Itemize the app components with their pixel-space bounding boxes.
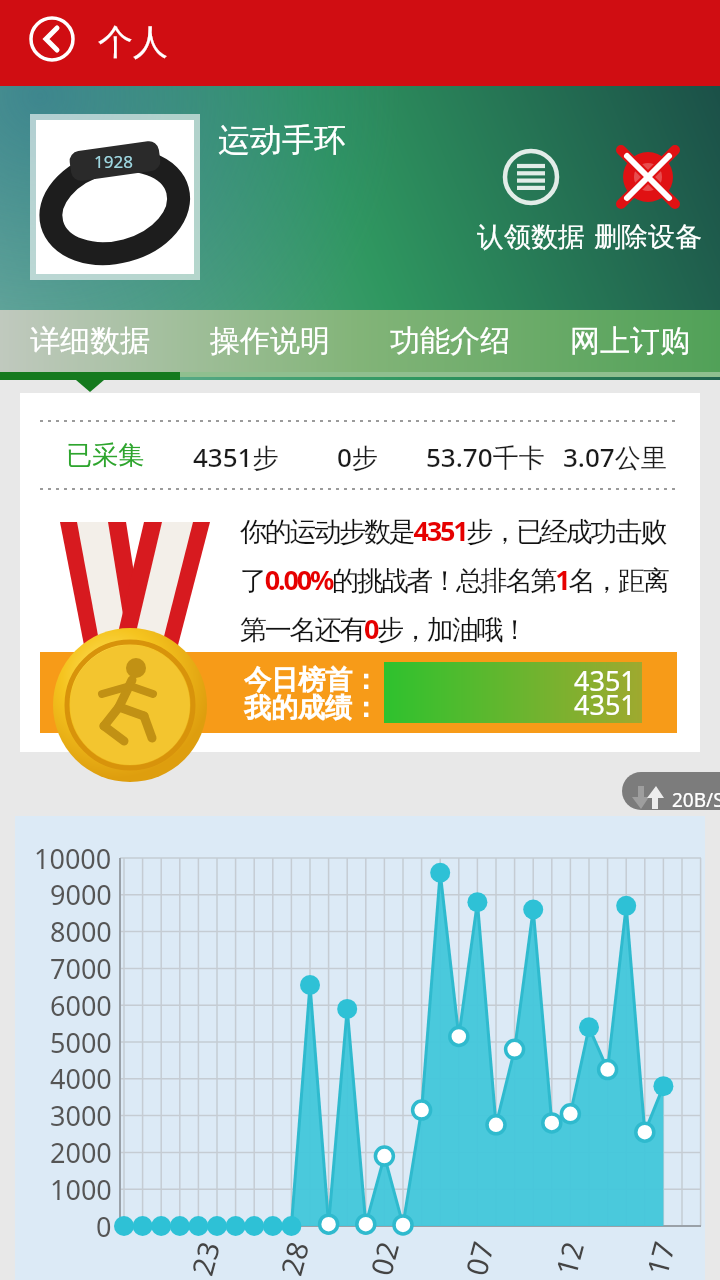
button[interactable]: 删除设备 <box>583 148 713 254</box>
staticText: 你的运动步数是4351步，已经成功击败 了0.00%的挑战者！总排名第1名，距离… <box>240 512 710 647</box>
staticText: 4351步 <box>193 439 279 475</box>
staticText: 我的成绩： <box>244 691 379 725</box>
button[interactable]: 详细数据 <box>0 310 180 372</box>
button[interactable] <box>26 13 78 65</box>
staticText: 已采集 <box>66 439 144 472</box>
staticText: 今日榜首： <box>244 663 379 697</box>
staticText: 认领数据 <box>477 220 585 254</box>
button[interactable]: 操作说明 <box>180 310 360 372</box>
staticText: 53.70千卡 <box>426 439 545 475</box>
button[interactable]: 网上订购 <box>540 310 720 372</box>
staticText: 0步 <box>337 439 378 475</box>
button[interactable]: 认领数据 <box>466 148 596 254</box>
staticText: 详细数据 <box>30 322 150 360</box>
button[interactable]: 20B/S <box>622 772 720 810</box>
staticText: 20B/S <box>672 787 720 810</box>
staticText: 4351 <box>574 662 636 699</box>
staticText: 运动手环 <box>218 120 346 160</box>
staticText: 网上订购 <box>570 322 690 360</box>
staticText: 操作说明 <box>210 322 330 360</box>
staticText: 删除设备 <box>594 220 702 254</box>
staticText: 4351 <box>574 686 636 723</box>
staticText: 1928 <box>94 150 133 173</box>
staticText: 功能介绍 <box>390 322 510 360</box>
button[interactable]: 功能介绍 <box>360 310 540 372</box>
staticText: 3.07公里 <box>563 439 667 475</box>
staticText: 个人 <box>98 20 168 64</box>
